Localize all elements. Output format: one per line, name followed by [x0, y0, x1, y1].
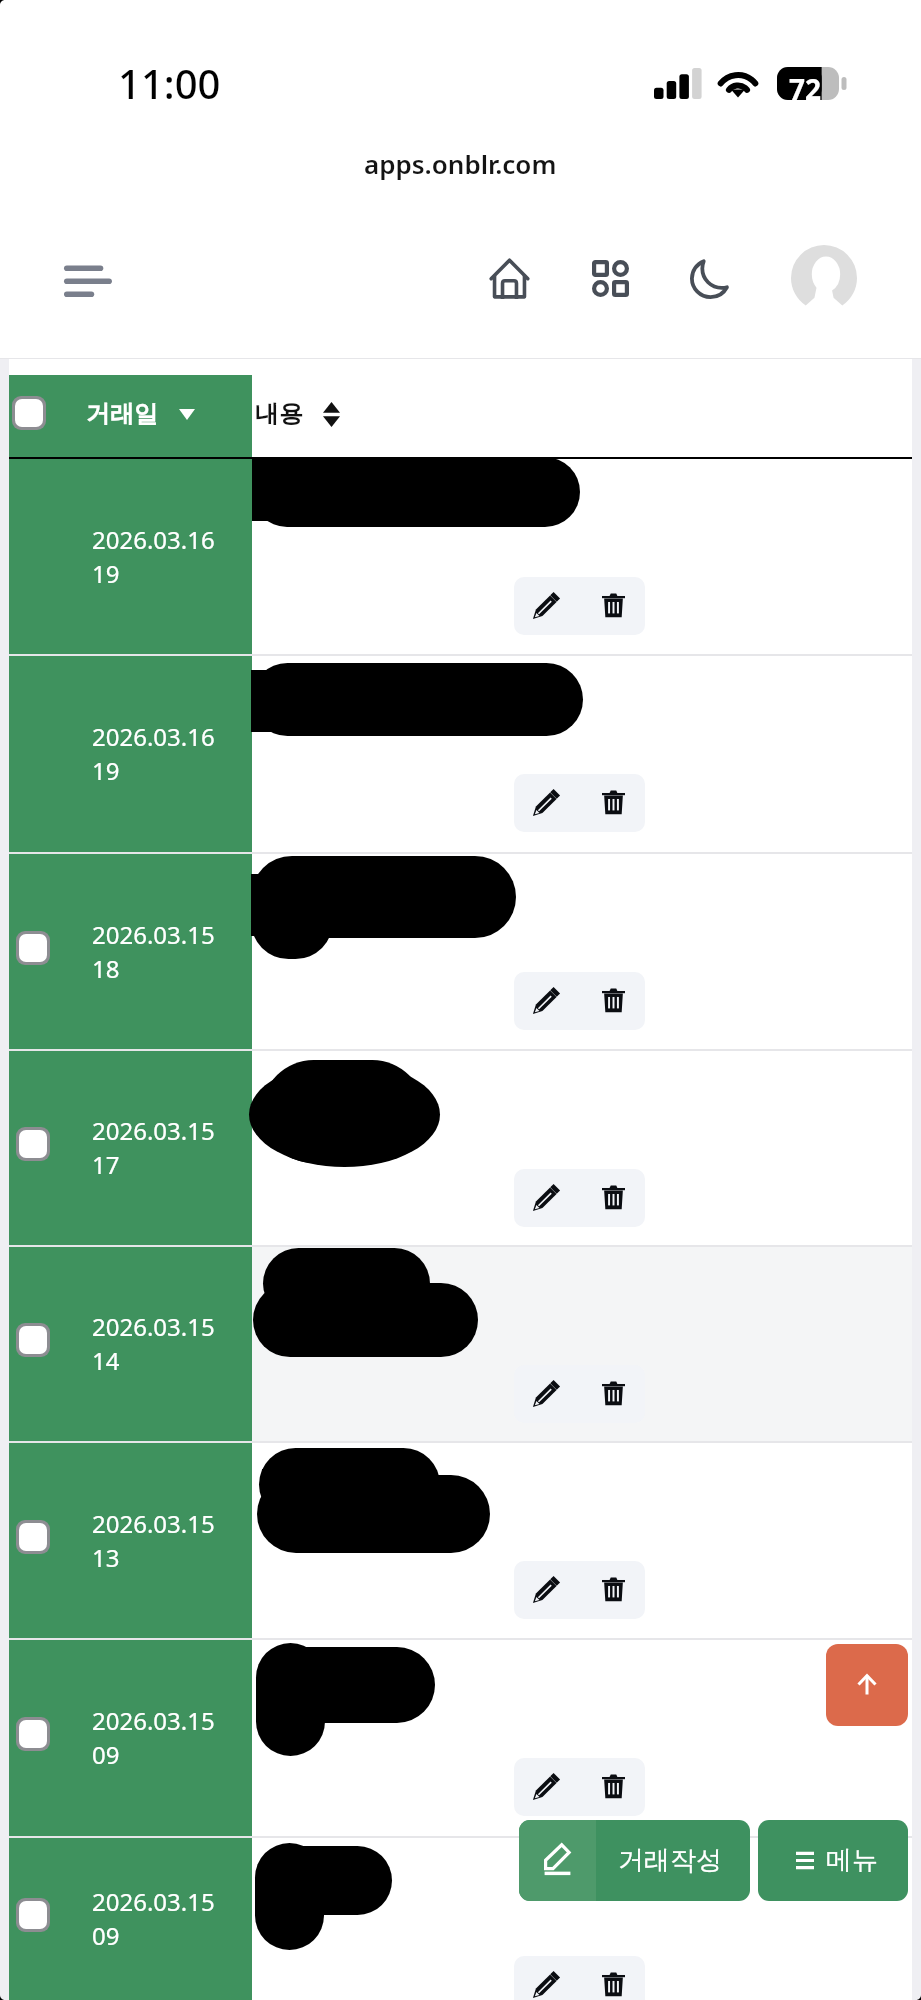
button[interactable]: Select	[19, 934, 47, 962]
button[interactable]: 거래작성	[519, 1820, 750, 1901]
button[interactable]: Apps	[573, 241, 647, 315]
staticText: 2026.03.15	[92, 1885, 215, 1918]
button[interactable]: Delete	[584, 1561, 642, 1619]
staticText: 거래작성	[618, 1844, 722, 1877]
button[interactable]: Edit	[516, 972, 574, 1030]
staticText: 2026.03.15	[92, 1704, 215, 1737]
staticText: 18	[92, 952, 120, 985]
button[interactable]: Select	[19, 1901, 47, 1929]
button[interactable]	[9, 1051, 252, 1245]
button[interactable]: Menu	[50, 244, 122, 316]
button[interactable]: Select	[19, 1523, 47, 1551]
staticText: 17	[92, 1148, 120, 1181]
staticText: 2026.03.15	[92, 1310, 215, 1343]
button[interactable]: Select	[19, 1720, 47, 1748]
button[interactable]: 메뉴	[758, 1820, 908, 1901]
button[interactable]: Edit	[516, 1561, 574, 1619]
staticText: 거래일	[86, 399, 158, 429]
staticText: 09	[92, 1738, 120, 1771]
button[interactable]: Select	[19, 1326, 47, 1354]
staticText: 13	[92, 1541, 120, 1574]
button[interactable]	[9, 459, 252, 654]
staticText: 2026.03.16	[92, 720, 215, 753]
button[interactable]: Edit	[516, 1956, 574, 2000]
button[interactable]: Delete	[584, 1365, 642, 1423]
button[interactable]: Select	[19, 1130, 47, 1158]
button[interactable]	[9, 1247, 252, 1441]
staticText: 2026.03.15	[92, 1507, 215, 1540]
staticText: 11:00	[118, 56, 221, 110]
button[interactable]: Delete	[584, 1169, 642, 1227]
button[interactable]: Delete	[584, 972, 642, 1030]
button[interactable]	[9, 854, 252, 1049]
staticText: 메뉴	[826, 1844, 878, 1877]
staticText: 2026.03.16	[92, 523, 215, 556]
staticText: 19	[92, 754, 120, 787]
button[interactable]: Edit	[516, 774, 574, 832]
button[interactable]: Profile	[791, 245, 857, 311]
button[interactable]: Select	[15, 399, 43, 427]
staticText: 14	[92, 1344, 120, 1377]
staticText: 19	[92, 557, 120, 590]
button[interactable]: Scroll to top	[826, 1644, 908, 1726]
staticText: 2026.03.15	[92, 1114, 215, 1147]
button[interactable]: Edit	[516, 577, 574, 635]
button[interactable]	[9, 1838, 252, 2000]
staticText: 09	[92, 1919, 120, 1952]
staticText: 내용	[255, 399, 303, 429]
staticText: 72	[789, 70, 822, 103]
button[interactable]: Edit	[516, 1365, 574, 1423]
button[interactable]: Delete	[584, 774, 642, 832]
staticText: apps.onblr.com	[364, 146, 557, 181]
button[interactable]	[9, 1640, 252, 1836]
button[interactable]: Home	[472, 241, 546, 315]
staticText: 2026.03.15	[92, 918, 215, 951]
button[interactable]: Edit	[516, 1169, 574, 1227]
button[interactable]: Delete	[584, 1758, 642, 1816]
button[interactable]: Delete	[584, 577, 642, 635]
button[interactable]	[9, 656, 252, 852]
button[interactable]: Delete	[584, 1956, 642, 2000]
button[interactable]	[9, 1443, 252, 1638]
button[interactable]: Dark mode	[673, 241, 747, 315]
button[interactable]: Edit	[516, 1758, 574, 1816]
